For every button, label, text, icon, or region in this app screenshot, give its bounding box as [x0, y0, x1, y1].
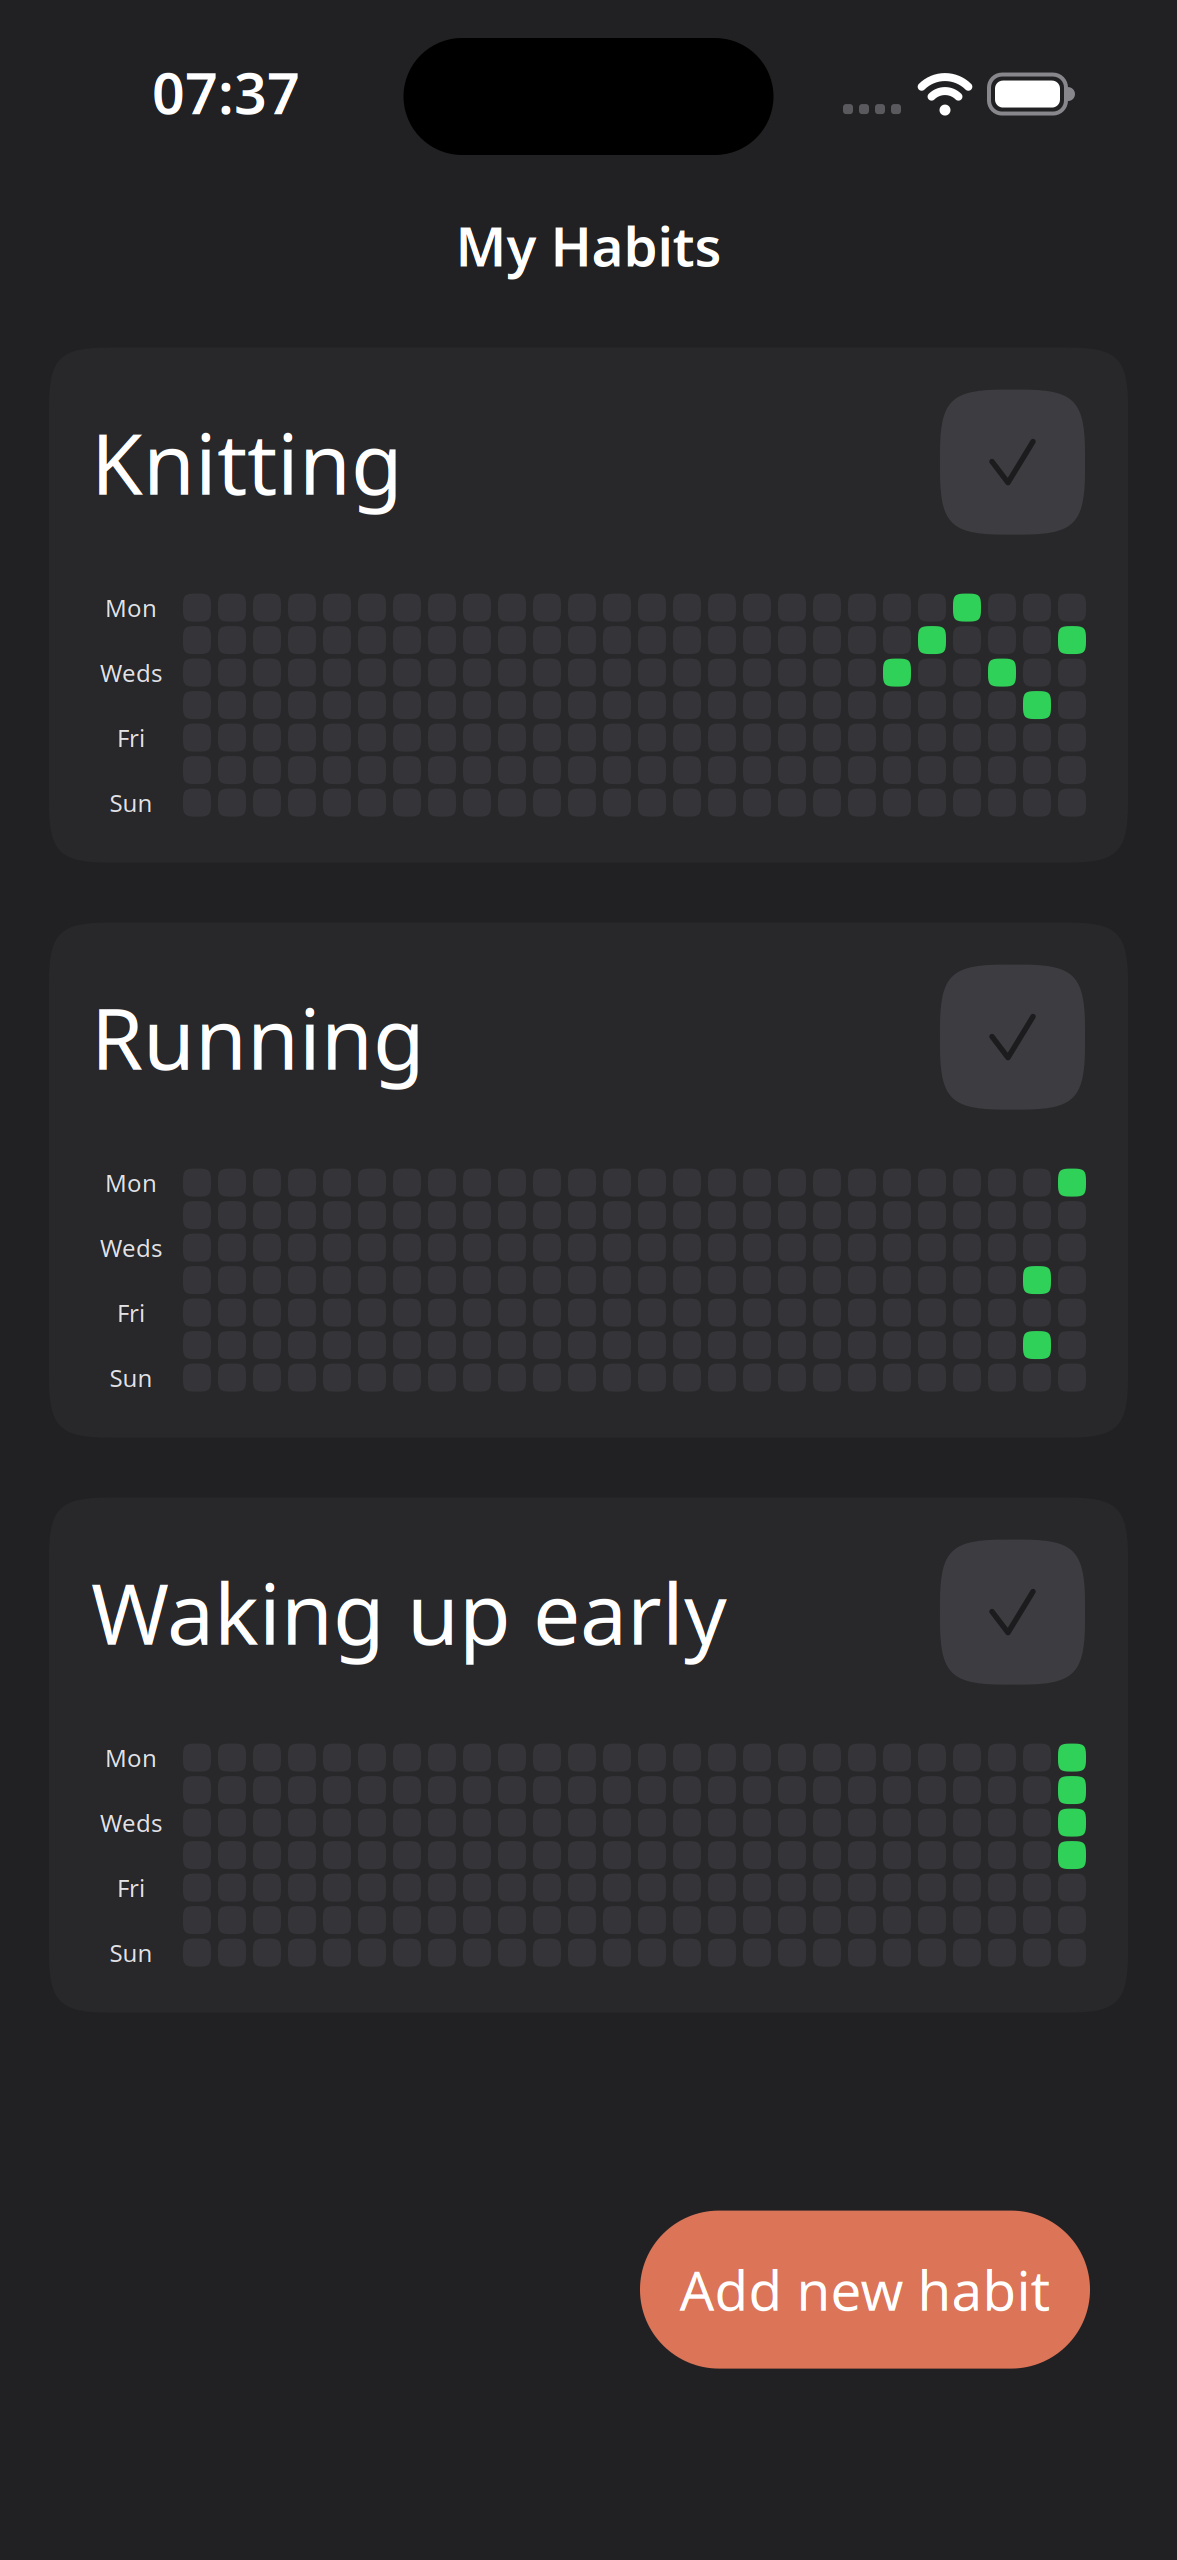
- staticText: Sun: [109, 787, 152, 819]
- button[interactable]: Add new habit: [640, 2211, 1090, 2369]
- staticText: Weds: [100, 657, 162, 689]
- staticText: Knitting: [91, 406, 403, 518]
- staticText: Fri: [117, 1872, 145, 1904]
- staticText: Mon: [105, 1742, 157, 1774]
- staticText: Fri: [117, 722, 145, 754]
- button[interactable]: Mark Running done today: [940, 965, 1085, 1110]
- staticText: 07:37: [152, 54, 300, 130]
- staticText: Fri: [117, 1297, 145, 1329]
- staticText: My Habits: [455, 209, 721, 282]
- staticText: Add new habit: [679, 2253, 1050, 2326]
- staticText: Sun: [109, 1362, 152, 1394]
- staticText: Mon: [105, 592, 157, 624]
- button[interactable]: Mark Knitting done today: [940, 390, 1085, 535]
- staticText: Weds: [100, 1232, 162, 1264]
- staticText: Mon: [105, 1167, 157, 1199]
- button[interactable]: Mark Waking up early done today: [940, 1540, 1085, 1685]
- staticText: Sun: [109, 1937, 152, 1969]
- staticText: Weds: [100, 1807, 162, 1839]
- staticText: Waking up early: [91, 1556, 727, 1668]
- staticText: Running: [91, 981, 425, 1093]
